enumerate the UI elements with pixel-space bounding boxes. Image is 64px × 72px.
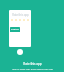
button[interactable]: Rate bbox=[17, 49, 23, 55]
button[interactable]: SUBMIT bbox=[10, 27, 20, 32]
staticText: SUBMIT bbox=[11, 28, 19, 31]
staticText: Tell us what you think about the app bbox=[12, 67, 53, 70]
staticText: Rate this app bbox=[12, 13, 29, 17]
staticText: Rate this app bbox=[23, 62, 42, 66]
